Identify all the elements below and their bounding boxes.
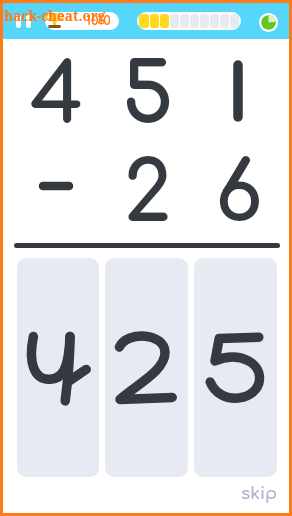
button[interactable]	[105, 258, 188, 477]
staticText: hack-cheat.org	[4, 7, 106, 25]
staticText: 6	[214, 148, 263, 240]
button[interactable]	[17, 258, 99, 477]
button[interactable]: skip	[241, 484, 277, 503]
button[interactable]	[194, 258, 277, 477]
staticText: 5	[121, 50, 174, 142]
staticText: 2	[123, 148, 172, 240]
button[interactable]: Pause	[10, 8, 36, 34]
staticText: 4	[29, 50, 84, 142]
staticText: 1010	[86, 14, 111, 28]
button[interactable]: Time left	[259, 13, 278, 32]
staticText: skip	[241, 484, 277, 503]
